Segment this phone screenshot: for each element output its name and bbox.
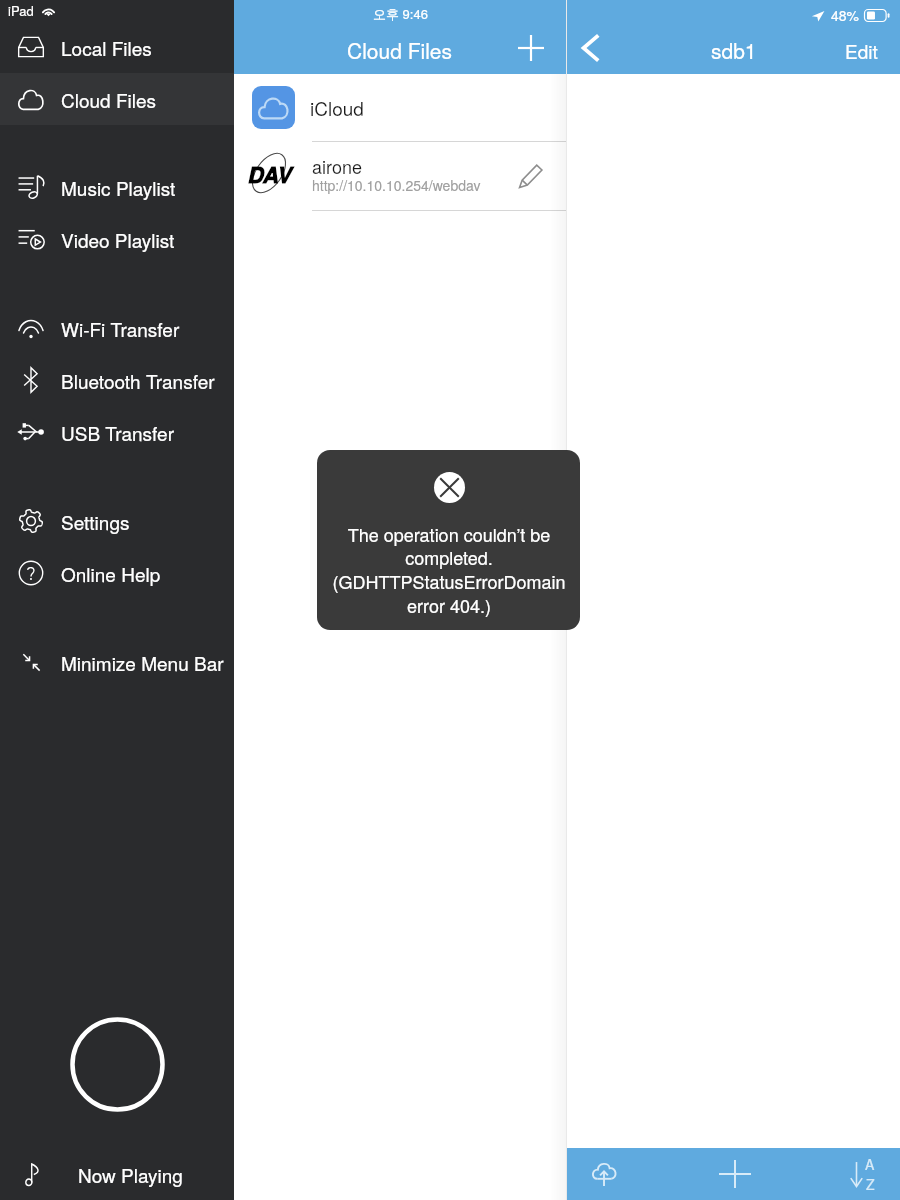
button[interactable]: DAV bbox=[234, 142, 566, 210]
button[interactable]: iCloud bbox=[234, 74, 566, 141]
staticText: Music Playlist bbox=[61, 174, 176, 201]
staticText: Now Playing bbox=[78, 1161, 183, 1188]
staticText: The operation couldn’t be completed. (GD… bbox=[323, 521, 575, 618]
staticText: Settings bbox=[61, 508, 130, 535]
button[interactable]: Video Playlist bbox=[0, 213, 234, 265]
staticText: Video Playlist bbox=[61, 226, 175, 253]
button[interactable]: Now Playing bbox=[0, 1149, 234, 1200]
staticText: Online Help bbox=[61, 560, 161, 587]
button[interactable]: Back bbox=[568, 26, 612, 70]
button[interactable]: Record bbox=[70, 1017, 165, 1112]
staticText: Wi-Fi Transfer bbox=[61, 315, 180, 342]
button[interactable]: Local Files bbox=[0, 21, 234, 73]
button[interactable]: Add bbox=[709, 1148, 761, 1200]
staticText: iCloud bbox=[310, 94, 364, 121]
button[interactable]: Online Help bbox=[0, 547, 234, 599]
staticText: Bluetooth Transfer bbox=[61, 367, 215, 394]
button[interactable]: Bluetooth Transfer bbox=[0, 354, 234, 406]
button[interactable]: Edit bbox=[506, 151, 556, 201]
staticText: Local Files bbox=[61, 34, 152, 61]
staticText: sdb1 bbox=[711, 35, 757, 65]
button[interactable]: Edit bbox=[845, 37, 878, 64]
staticText: Edit bbox=[845, 37, 878, 64]
staticText: Cloud Files bbox=[347, 35, 453, 65]
button[interactable]: Add bbox=[509, 26, 553, 70]
button[interactable]: Settings bbox=[0, 495, 234, 547]
staticText: http://10.10.10.254/webdav bbox=[312, 175, 481, 195]
staticText: airone bbox=[312, 153, 362, 179]
staticText: DAV bbox=[248, 158, 292, 189]
staticText: USB Transfer bbox=[61, 419, 174, 446]
button[interactable]: Cloud Files bbox=[0, 73, 234, 125]
button[interactable]: Upload to cloud bbox=[578, 1148, 630, 1200]
staticText: A bbox=[865, 1154, 875, 1174]
button[interactable]: Music Playlist bbox=[0, 161, 234, 213]
staticText: 48% bbox=[831, 5, 860, 25]
staticText: Cloud Files bbox=[61, 86, 157, 113]
staticText: Minimize Menu Bar bbox=[61, 649, 224, 676]
button[interactable]: Sort A to Z bbox=[836, 1148, 888, 1200]
staticText: iPad bbox=[8, 1, 34, 20]
button[interactable]: Minimize Menu Bar bbox=[0, 636, 234, 688]
button[interactable]: USB Transfer bbox=[0, 406, 234, 458]
button[interactable]: Wi-Fi Transfer bbox=[0, 302, 234, 354]
staticText: 오후 9:46 bbox=[373, 4, 428, 23]
staticText: Z bbox=[866, 1174, 875, 1194]
